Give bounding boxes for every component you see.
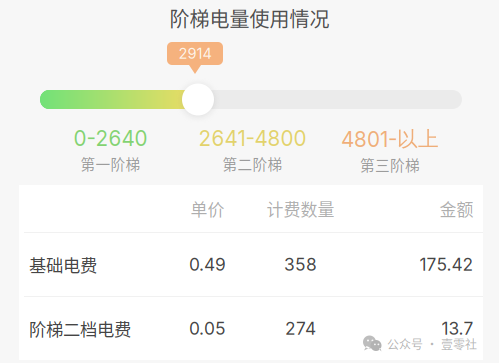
staticText: 阶梯二档电费 <box>29 316 131 341</box>
staticText: 175.42 <box>419 254 473 275</box>
staticText: 单价 <box>190 196 224 221</box>
staticText: 第二阶梯 <box>222 153 282 174</box>
staticText: 公众号 · 壹零社 <box>387 335 477 353</box>
staticText: 2641-4800 <box>198 126 306 151</box>
staticText: 0.05 <box>189 318 226 339</box>
staticText: 金额 <box>439 196 473 221</box>
button[interactable]: 基础电费 <box>19 233 483 296</box>
staticText: 13.7 <box>441 318 473 339</box>
staticText: 274 <box>285 318 316 339</box>
staticText: 基础电费 <box>29 252 97 277</box>
staticText: 第三阶梯 <box>360 154 420 175</box>
staticText: 第一阶梯 <box>80 153 140 174</box>
staticText: 358 <box>284 254 317 275</box>
staticText: 0.49 <box>189 254 226 275</box>
staticText: 计费数量 <box>266 196 334 221</box>
staticText: 阶梯电量使用情况 <box>169 3 329 32</box>
staticText: 0-2640 <box>73 126 147 151</box>
staticText: 4801-以上 <box>341 126 439 152</box>
staticText: 2914 <box>178 45 211 62</box>
button[interactable]: 阶梯二档电费 <box>19 297 483 360</box>
